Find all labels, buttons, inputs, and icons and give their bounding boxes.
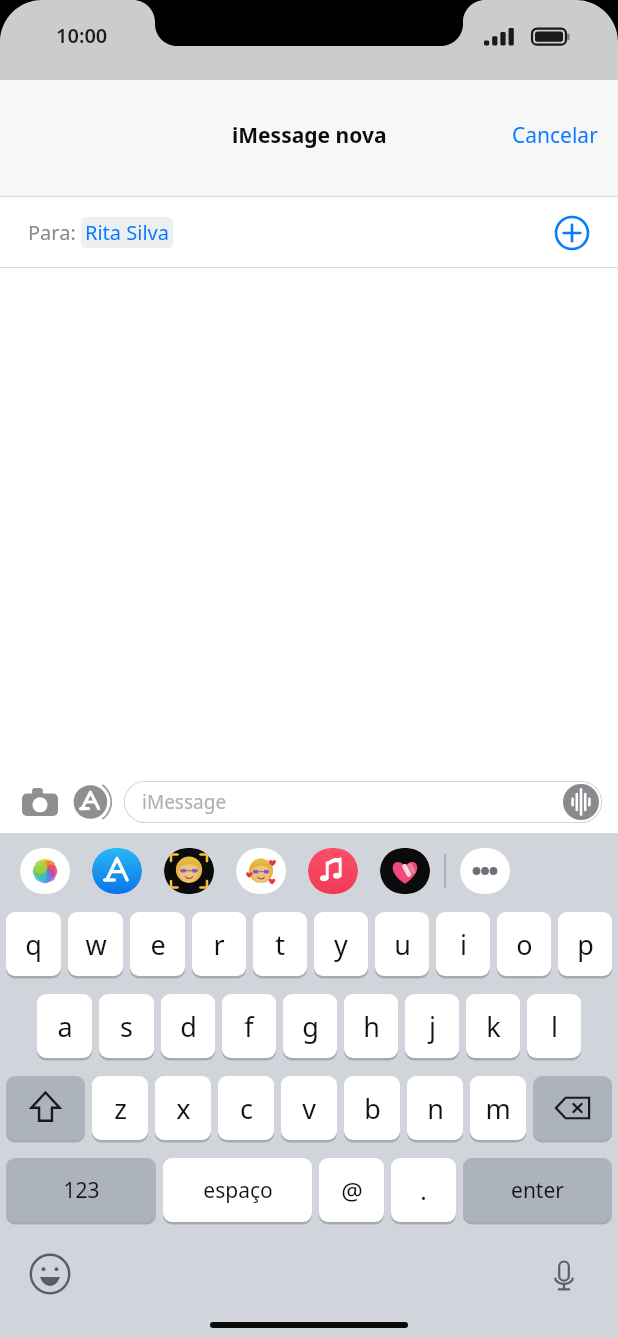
staticText: g [302, 1008, 319, 1045]
button[interactable]: s [99, 994, 154, 1058]
button[interactable]: m [470, 1076, 526, 1140]
button[interactable]: App [20, 848, 70, 894]
button[interactable]: y [314, 912, 368, 976]
staticText: y [334, 926, 348, 963]
button[interactable]: b [344, 1076, 400, 1140]
button[interactable]: h [344, 994, 398, 1058]
staticText: Cancelar [512, 121, 598, 150]
button[interactable]: u [375, 912, 429, 976]
staticText: iMessage [142, 789, 227, 815]
staticText: d [180, 1008, 197, 1045]
staticText: v [302, 1090, 316, 1127]
button[interactable]: g [283, 994, 337, 1058]
button[interactable]: x [155, 1076, 211, 1140]
button[interactable]: . [391, 1158, 456, 1222]
staticText: n [427, 1090, 444, 1127]
staticText: b [364, 1090, 381, 1127]
staticText: Para: [28, 219, 76, 246]
button[interactable]: Ditado [540, 1250, 588, 1298]
button[interactable]: c [218, 1076, 274, 1140]
button[interactable]: q [6, 912, 61, 976]
button[interactable]: f [222, 994, 276, 1058]
button[interactable]: e [130, 912, 185, 976]
staticText: e [150, 926, 166, 963]
button[interactable]: p [558, 912, 612, 976]
button[interactable]: j [405, 994, 459, 1058]
staticText: i [460, 926, 467, 963]
button[interactable]: Apagar [533, 1076, 612, 1140]
staticText: Rita Silva [85, 219, 169, 246]
button[interactable]: App [236, 848, 286, 894]
button[interactable]: App [92, 848, 142, 894]
button[interactable]: l [527, 994, 581, 1058]
staticText: l [551, 1008, 558, 1045]
button[interactable]: espaço [163, 1158, 312, 1222]
button[interactable]: t [253, 912, 307, 976]
staticText: m [485, 1090, 511, 1127]
staticText: iMessage nova [232, 121, 387, 150]
button[interactable]: i [436, 912, 490, 976]
staticText: u [394, 926, 411, 963]
staticText: . [420, 1174, 427, 1207]
button[interactable]: Apps [72, 782, 112, 822]
button[interactable]: iMessage [124, 781, 602, 823]
staticText: o [516, 926, 533, 963]
button[interactable]: App [308, 848, 358, 894]
button[interactable]: k [466, 994, 520, 1058]
button[interactable]: Emoji [26, 1250, 74, 1298]
button[interactable]: Shift [6, 1076, 85, 1140]
staticText: f [244, 1008, 254, 1045]
staticText: x [176, 1090, 191, 1127]
staticText: z [114, 1090, 127, 1127]
button[interactable]: n [407, 1076, 463, 1140]
button[interactable]: Câmara [18, 780, 62, 824]
button[interactable]: 123 [6, 1158, 156, 1222]
button[interactable]: App [380, 848, 430, 894]
staticText: j [429, 1008, 436, 1045]
staticText: r [213, 926, 225, 963]
button[interactable]: o [497, 912, 551, 976]
staticText: a [57, 1008, 73, 1045]
staticText: p [577, 926, 594, 963]
button[interactable]: @ [319, 1158, 384, 1222]
staticText: c [240, 1090, 253, 1127]
button[interactable]: Adicionar contacto [550, 211, 594, 255]
button[interactable]: App [460, 848, 510, 894]
staticText: q [25, 926, 42, 963]
button[interactable]: enter [463, 1158, 612, 1222]
button[interactable]: App [164, 848, 214, 894]
button[interactable]: d [161, 994, 215, 1058]
staticText: h [363, 1008, 380, 1045]
button[interactable]: r [192, 912, 246, 976]
button[interactable]: z [92, 1076, 148, 1140]
staticText: t [275, 926, 285, 963]
staticText: 123 [63, 1176, 100, 1205]
button[interactable]: Gravar áudio [563, 784, 599, 820]
staticText: espaço [203, 1176, 273, 1205]
staticText: k [486, 1008, 501, 1045]
staticText: @ [341, 1174, 363, 1207]
button[interactable]: Rita Silva [81, 217, 173, 248]
button[interactable]: a [37, 994, 92, 1058]
staticText: 10:00 [56, 22, 108, 49]
staticText: w [85, 926, 107, 963]
button[interactable]: v [281, 1076, 337, 1140]
staticText: enter [511, 1176, 564, 1205]
staticText: s [120, 1008, 133, 1045]
button[interactable]: w [68, 912, 123, 976]
button[interactable]: Cancelar [492, 111, 618, 160]
